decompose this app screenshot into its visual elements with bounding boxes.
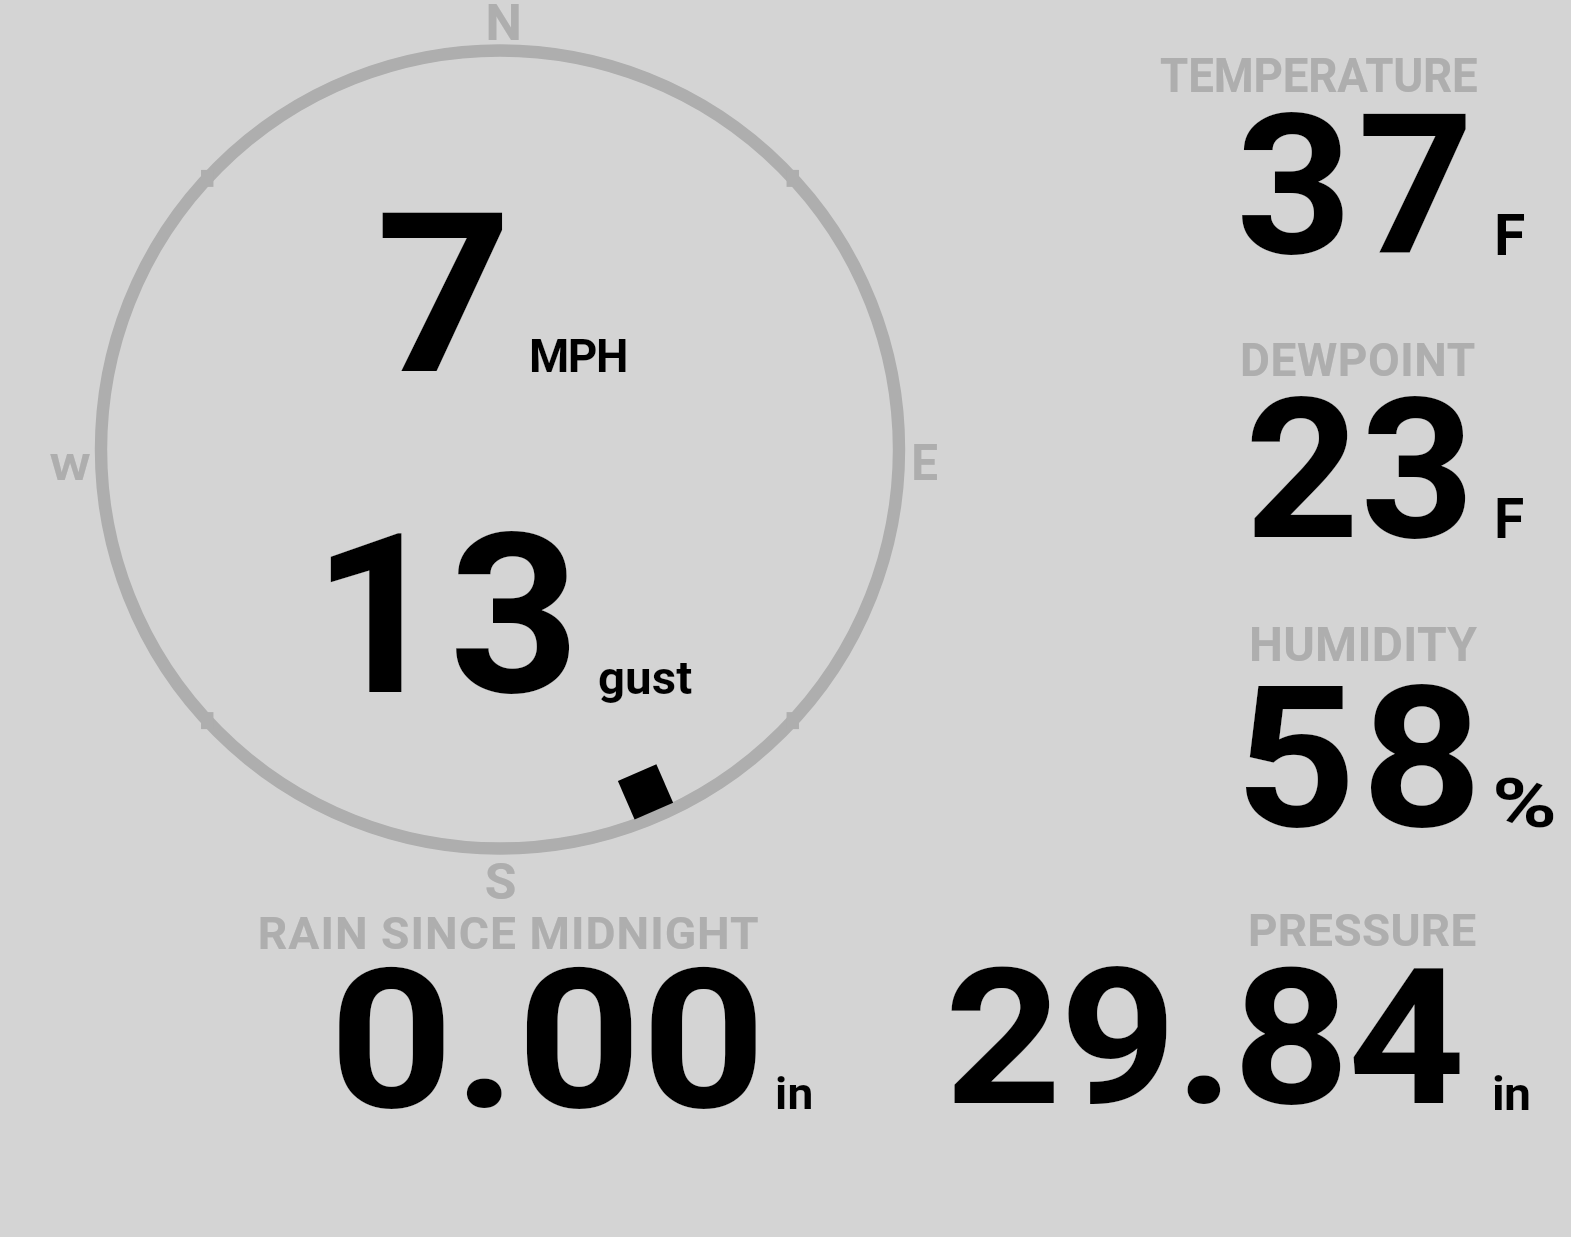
button[interactable]: Wind 7 miles per hour, gusting 13 [40, 0, 970, 900]
button[interactable]: Temperature 37 degrees Fahrenheit [1100, 30, 1571, 310]
button[interactable]: Rain since midnight 0.00 inches [230, 895, 840, 1135]
button[interactable]: Dewpoint 23 degrees Fahrenheit [1100, 315, 1571, 590]
button[interactable]: Pressure 29.84 inches [900, 890, 1560, 1135]
button[interactable]: Humidity 58 percent [1100, 600, 1571, 870]
